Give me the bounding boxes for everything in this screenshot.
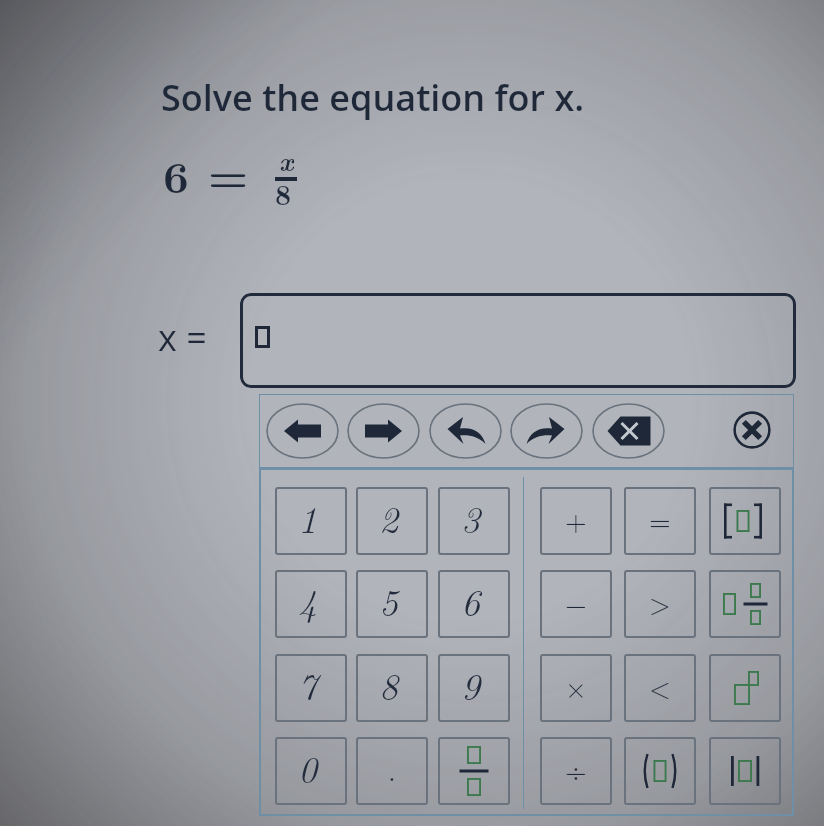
button[interactable]: Redo [510, 403, 583, 459]
button[interactable]: + [540, 487, 612, 555]
staticText: 2 [379, 490, 399, 544]
button[interactable]: Move left [266, 403, 339, 459]
button[interactable]: 2 [356, 487, 428, 555]
staticText: 8 [379, 657, 399, 711]
button[interactable]: 0 [275, 737, 347, 805]
staticText: 4 [298, 573, 318, 627]
staticText: − [565, 582, 587, 622]
button[interactable] [709, 737, 781, 805]
staticText: 0 [298, 740, 318, 794]
button[interactable]: Undo [429, 403, 502, 459]
button[interactable] [709, 487, 781, 555]
button[interactable]: 6 [438, 570, 510, 638]
button[interactable] [709, 570, 781, 638]
button[interactable] [624, 737, 696, 805]
button[interactable]: Backspace [592, 403, 665, 459]
button[interactable]: Move right [347, 403, 420, 459]
staticText: × [565, 666, 587, 706]
staticText: x = [158, 313, 207, 362]
button[interactable]: Close keypad [733, 411, 771, 449]
staticText: + [565, 499, 587, 539]
button[interactable]: 3 [438, 487, 510, 555]
button[interactable]: . [356, 737, 428, 805]
button[interactable]: 8 [356, 654, 428, 722]
staticText: = [649, 499, 671, 539]
button[interactable] [709, 654, 781, 722]
button[interactable]: 7 [275, 654, 347, 722]
button[interactable]: × [540, 654, 612, 722]
button[interactable]: 1 [275, 487, 347, 555]
button[interactable]: 4 [275, 570, 347, 638]
button[interactable]: < [624, 654, 696, 722]
staticText: 6 [163, 142, 189, 206]
button[interactable]: 5 [356, 570, 428, 638]
button[interactable]: ÷ [540, 737, 612, 805]
button[interactable] [240, 293, 796, 388]
button[interactable]: > [624, 570, 696, 638]
staticText: Solve the equation for x. [161, 73, 585, 122]
staticText: 5 [379, 573, 399, 627]
staticText: ÷ [565, 749, 587, 789]
staticText: 3 [461, 490, 481, 544]
staticText: 8 [275, 173, 292, 213]
staticText: > [649, 582, 671, 622]
button[interactable]: 9 [438, 654, 510, 722]
staticText: . [388, 749, 396, 789]
button[interactable]: = [624, 487, 696, 555]
staticText: 9 [461, 657, 481, 711]
staticText: 7 [298, 657, 318, 711]
button[interactable] [438, 737, 510, 805]
button[interactable]: − [540, 570, 612, 638]
staticText: x [279, 141, 294, 171]
staticText: < [649, 666, 671, 706]
staticText: 6 [461, 573, 481, 627]
staticText: = [208, 141, 249, 205]
staticText: 1 [298, 490, 318, 544]
